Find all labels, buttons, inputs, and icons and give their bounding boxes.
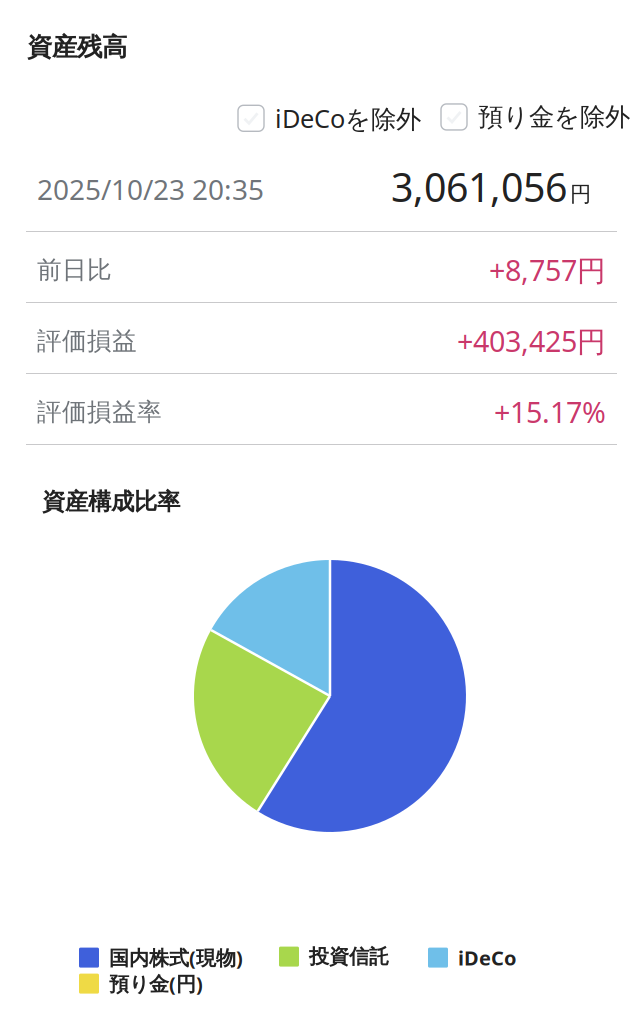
staticText: 資産残高: [27, 31, 127, 63]
staticText: 評価損益率: [37, 396, 162, 428]
staticText: 預り金(円): [109, 970, 203, 997]
staticText: 3,061,056: [391, 160, 567, 214]
staticText: 円: [570, 181, 591, 208]
staticText: iDeCoを除外: [275, 101, 421, 136]
staticText: 2025/10/23 20:35: [37, 170, 264, 208]
staticText: 評価損益: [37, 325, 137, 357]
staticText: iDeCo: [458, 944, 517, 971]
button[interactable]: 預り金を除外: [441, 101, 630, 133]
staticText: +403,425円: [457, 321, 606, 360]
staticText: 資産構成比率: [42, 487, 180, 516]
staticText: 国内株式(現物): [109, 944, 243, 971]
staticText: 前日比: [37, 254, 112, 286]
staticText: +8,757円: [489, 250, 606, 289]
staticText: 預り金を除外: [478, 101, 630, 133]
staticText: +15.17%: [494, 392, 606, 431]
button[interactable]: iDeCoを除外: [238, 101, 421, 136]
staticText: 投資信託: [309, 944, 389, 969]
